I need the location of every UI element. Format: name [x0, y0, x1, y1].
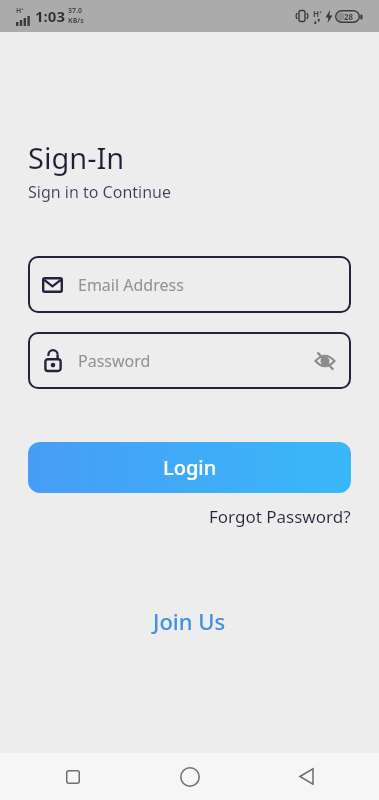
- staticText: 37.0: [68, 6, 82, 16]
- button[interactable]: [131, 753, 248, 800]
- staticText: KB/s: [68, 16, 84, 26]
- button[interactable]: [14, 753, 131, 800]
- staticText: Password: [78, 350, 151, 372]
- staticText: Sign in to Continue: [28, 181, 171, 203]
- staticText: 28: [344, 11, 354, 22]
- staticText: Login: [163, 454, 217, 481]
- button[interactable]: Login: [28, 442, 351, 493]
- button[interactable]: Forgot Password?: [209, 505, 351, 528]
- staticText: 1:03: [35, 6, 65, 26]
- staticText: H⁺: [16, 6, 24, 16]
- button[interactable]: [248, 753, 365, 800]
- button[interactable]: Join Us: [153, 606, 226, 636]
- button[interactable]: Email Address: [28, 256, 351, 313]
- staticText: Join Us: [153, 606, 226, 636]
- button[interactable]: Password: [28, 332, 351, 389]
- staticText: Email Address: [78, 274, 184, 296]
- staticText: Sign-In: [28, 138, 125, 177]
- staticText: H⁺: [313, 8, 322, 19]
- staticText: Forgot Password?: [209, 505, 351, 528]
